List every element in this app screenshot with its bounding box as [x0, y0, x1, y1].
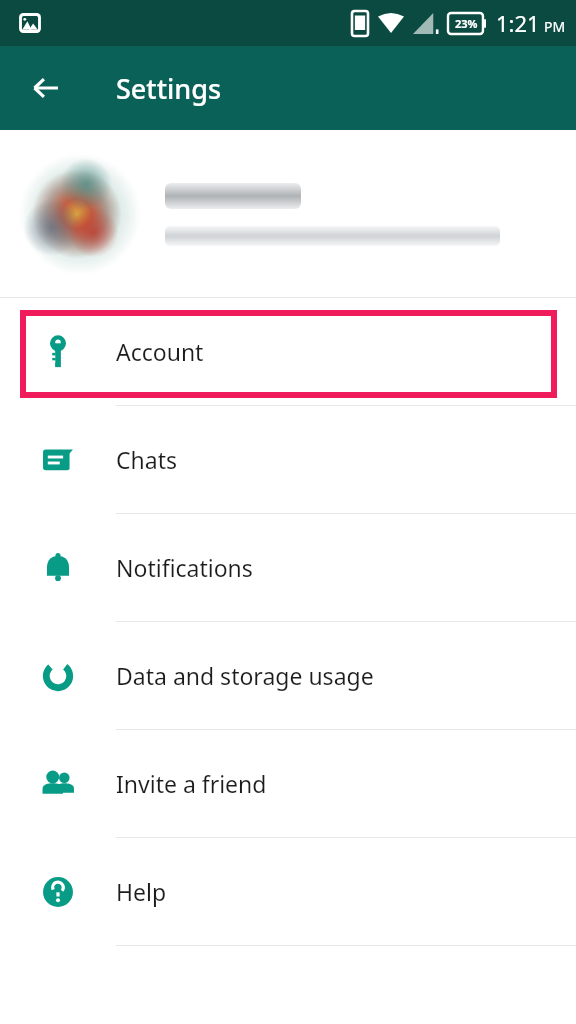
- button[interactable]: Chats: [0, 406, 576, 513]
- staticText: Chats: [116, 444, 177, 475]
- button[interactable]: Help: [0, 838, 576, 945]
- staticText: Settings: [116, 70, 222, 107]
- staticText: PM: [544, 17, 566, 36]
- button[interactable]: Account: [0, 298, 576, 405]
- staticText: Help: [116, 876, 167, 907]
- staticText: 1:21: [496, 8, 540, 38]
- staticText: Account: [116, 336, 204, 367]
- button[interactable]: Data and storage usage: [0, 622, 576, 729]
- staticText: Invite a friend: [116, 768, 267, 799]
- button[interactable]: Invite a friend: [0, 730, 576, 837]
- staticText: Data and storage usage: [116, 660, 374, 691]
- button[interactable]: Notifications: [0, 514, 576, 621]
- staticText: Notifications: [116, 552, 253, 583]
- staticText: 23%: [455, 16, 478, 31]
- button[interactable]: Back: [22, 64, 70, 112]
- button[interactable]: [0, 130, 576, 297]
